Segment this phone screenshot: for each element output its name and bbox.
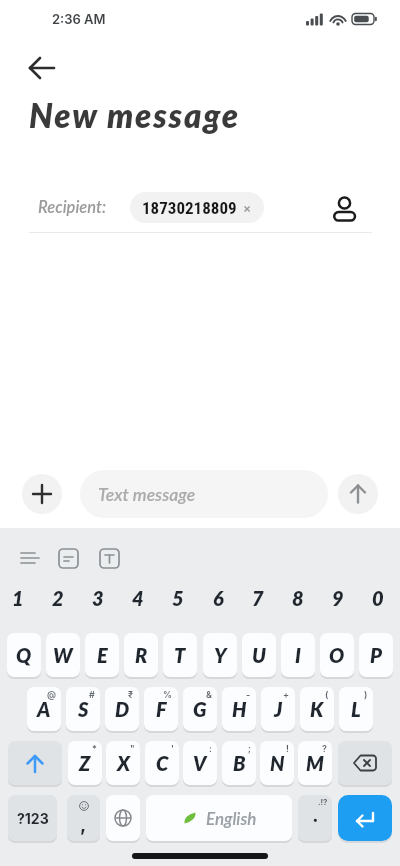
staticText: H	[232, 697, 247, 721]
button[interactable]: Text message	[80, 470, 328, 518]
button[interactable]: A	[27, 687, 61, 731]
staticText: Y	[214, 643, 227, 667]
button[interactable]: 5	[161, 583, 195, 613]
button[interactable]: 8	[281, 583, 315, 613]
staticText: X	[117, 751, 130, 775]
staticText: 18730218809	[142, 198, 237, 218]
staticText: 9	[332, 586, 344, 610]
button[interactable]: U	[242, 633, 276, 677]
staticText: J	[274, 697, 283, 721]
staticText: (	[325, 689, 329, 700]
staticText: K	[310, 697, 324, 721]
button[interactable]: O	[320, 633, 354, 677]
button[interactable]	[54, 544, 86, 574]
staticText: T	[174, 643, 186, 667]
staticText: Recipient:	[38, 197, 107, 217]
button[interactable]	[95, 544, 127, 574]
staticText: #	[89, 689, 95, 700]
staticText: 8	[292, 586, 304, 610]
button[interactable]: N	[260, 741, 294, 785]
staticText: R	[135, 643, 148, 667]
button[interactable]	[338, 741, 392, 785]
button[interactable]: Z	[68, 741, 102, 785]
staticText: N	[270, 751, 285, 775]
button[interactable]: English	[146, 795, 292, 841]
staticText: .!?	[318, 797, 328, 807]
button[interactable]: ?123	[8, 795, 57, 841]
button[interactable]: Q	[7, 633, 41, 677]
button[interactable]: S	[66, 687, 100, 731]
staticText: 7	[252, 586, 264, 610]
button[interactable]: C	[145, 741, 179, 785]
staticText: %	[163, 689, 173, 700]
button[interactable]	[106, 795, 140, 841]
staticText: -	[246, 689, 251, 700]
staticText: ?123	[17, 810, 49, 827]
button[interactable]: T	[163, 633, 197, 677]
staticText: +	[283, 689, 290, 700]
button[interactable]: G	[183, 687, 217, 731]
button[interactable]: 0	[361, 583, 395, 613]
button[interactable]: 1	[1, 583, 35, 613]
button[interactable]: Y	[203, 633, 237, 677]
button[interactable]: P	[359, 633, 393, 677]
button[interactable]: 6	[201, 583, 235, 613]
button[interactable]: D	[105, 687, 139, 731]
staticText: 5	[172, 586, 184, 610]
button[interactable]: B	[222, 741, 256, 785]
button[interactable]: 3	[81, 583, 115, 613]
button[interactable]: H	[222, 687, 256, 731]
button[interactable]: 2	[41, 583, 75, 613]
staticText: '	[171, 743, 174, 754]
button[interactable]: W	[46, 633, 80, 677]
button[interactable]	[338, 795, 392, 841]
staticText: English	[206, 808, 257, 828]
staticText: New message	[29, 95, 240, 135]
staticText: &	[206, 689, 212, 700]
button[interactable]: 9	[321, 583, 355, 613]
button[interactable]	[14, 544, 46, 574]
button[interactable]: X	[106, 741, 140, 785]
button[interactable]: ,	[67, 795, 100, 841]
staticText: 6	[213, 586, 224, 610]
staticText: @	[47, 689, 56, 700]
staticText: 4	[132, 586, 144, 610]
staticText: ?	[322, 743, 327, 754]
button[interactable]: 4	[121, 583, 155, 613]
button[interactable]	[330, 190, 360, 226]
staticText: Q	[16, 643, 32, 667]
staticText: 3	[92, 586, 104, 610]
staticText: Z	[79, 751, 91, 775]
button[interactable]: .	[298, 795, 332, 841]
staticText: C	[156, 751, 169, 775]
staticText: Text message	[98, 484, 196, 505]
staticText: *	[92, 743, 97, 754]
button[interactable]: E	[85, 633, 119, 677]
button[interactable]: R	[124, 633, 158, 677]
button[interactable]	[22, 474, 62, 514]
button[interactable]: F	[144, 687, 178, 731]
button[interactable]: I	[281, 633, 315, 677]
staticText: E	[97, 643, 108, 667]
button[interactable]: J	[261, 687, 295, 731]
staticText: W	[53, 643, 73, 667]
staticText: 2:36 AM	[52, 11, 106, 27]
button[interactable]: K	[300, 687, 334, 731]
button[interactable]	[24, 51, 60, 85]
button[interactable]: M	[298, 741, 332, 785]
button[interactable]: 7	[241, 583, 275, 613]
staticText: U	[252, 643, 266, 667]
staticText: V	[193, 751, 207, 775]
staticText: O	[329, 643, 345, 667]
staticText: 0	[372, 586, 384, 610]
button[interactable]: L	[339, 687, 373, 731]
staticText: A	[37, 697, 51, 721]
staticText: M	[306, 751, 324, 775]
button[interactable]: V	[183, 741, 217, 785]
staticText: S	[78, 697, 89, 721]
button[interactable]	[8, 741, 62, 785]
button[interactable]: 18730218809	[130, 192, 264, 223]
button[interactable]	[338, 474, 378, 514]
staticText: F	[156, 697, 167, 721]
staticText: 1	[12, 586, 24, 610]
